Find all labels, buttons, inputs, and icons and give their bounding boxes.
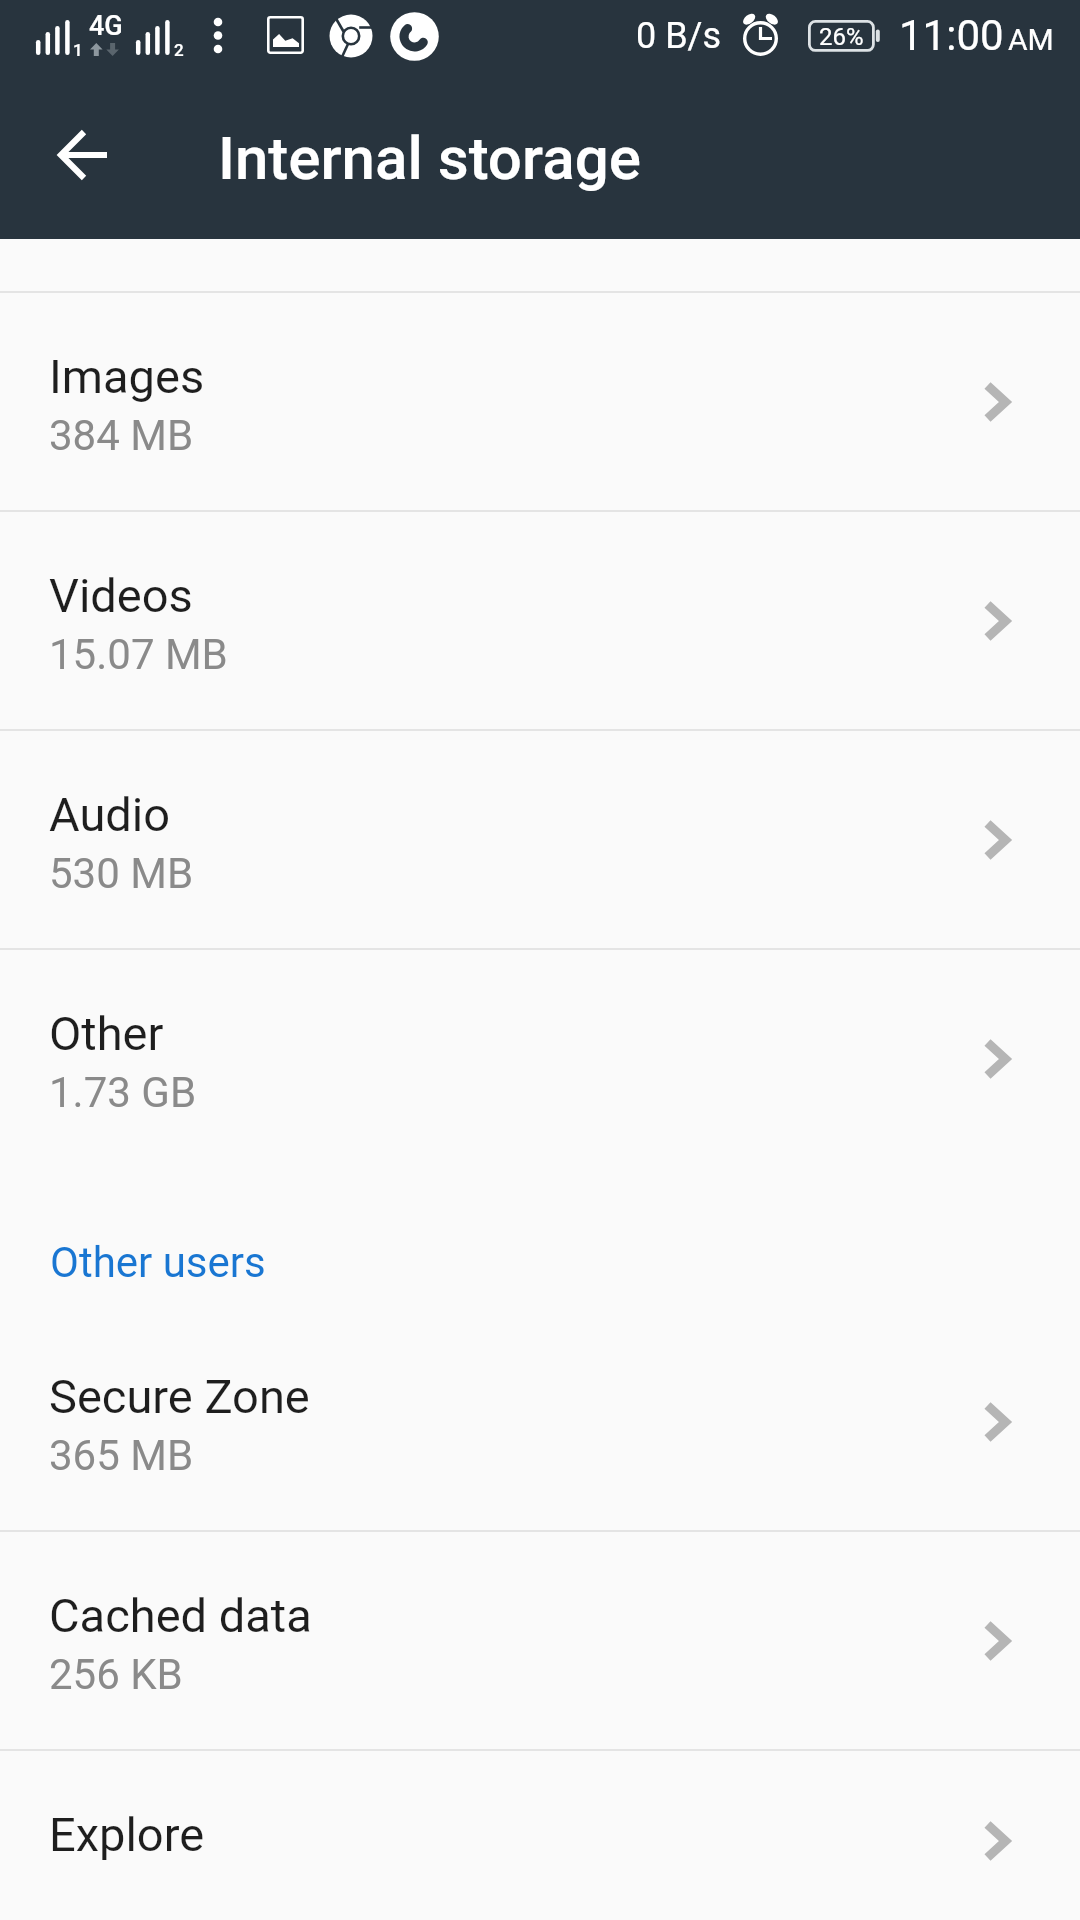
staticText: Internal storage	[218, 123, 641, 193]
button[interactable]: Audio	[0, 731, 1080, 948]
button[interactable]: Explore	[0, 1751, 1080, 1920]
staticText: 11:00	[899, 11, 1004, 60]
staticText: Videos	[49, 568, 193, 623]
staticText: Other users	[50, 1238, 266, 1287]
staticText: 384 MB	[49, 411, 194, 460]
staticText: 4G	[89, 10, 123, 42]
staticText: 365 MB	[49, 1431, 194, 1480]
staticText: Audio	[49, 787, 171, 842]
staticText: Secure Zone	[49, 1369, 310, 1424]
button[interactable]: Videos	[0, 512, 1080, 729]
staticText: 1.73 GB	[49, 1068, 197, 1117]
staticText: 256 KB	[49, 1650, 183, 1699]
staticText: Cached data	[49, 1588, 312, 1643]
staticText: Other	[49, 1006, 164, 1061]
staticText: 15.07 MB	[49, 630, 228, 679]
staticText: Images	[49, 349, 205, 404]
button[interactable]	[48, 120, 120, 192]
staticText: 2	[174, 40, 184, 60]
staticText: 0 B/s	[636, 15, 722, 57]
button[interactable]: Cached data	[0, 1532, 1080, 1749]
staticText: Explore	[49, 1807, 205, 1862]
button[interactable]: Images	[0, 293, 1080, 510]
staticText: 530 MB	[49, 849, 194, 898]
staticText: AM	[1008, 22, 1054, 57]
staticText: 26%	[819, 23, 864, 51]
button[interactable]: Secure Zone	[0, 1313, 1080, 1530]
button[interactable]: Other	[0, 950, 1080, 1167]
staticText: 1	[73, 40, 83, 60]
